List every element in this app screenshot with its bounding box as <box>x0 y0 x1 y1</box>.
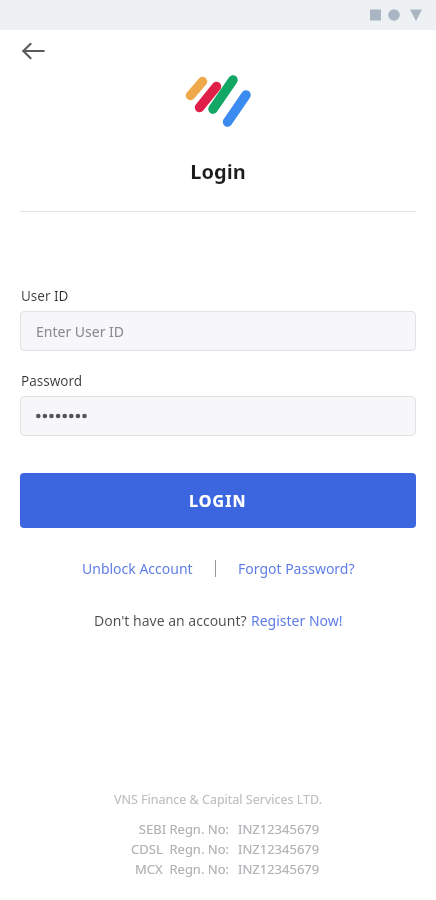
button[interactable]: Forgot Password? <box>232 555 361 582</box>
staticText: MCX Regn. No: <box>117 860 229 878</box>
staticText: Enter User ID <box>36 322 125 341</box>
button[interactable] <box>20 396 416 436</box>
staticText: SEBI Regn. No: <box>117 820 229 838</box>
staticText: INZ12345679 <box>238 820 320 838</box>
staticText: Register Now! <box>251 611 343 630</box>
button[interactable]: Enter User ID <box>20 311 416 351</box>
button[interactable]: LOGIN <box>20 473 416 528</box>
button[interactable]: Back <box>12 30 54 72</box>
staticText: VNS Finance & Capital Services LTD. <box>114 791 322 808</box>
staticText: User ID <box>21 287 69 305</box>
staticText: LOGIN <box>189 490 247 512</box>
button[interactable]: Register Now! <box>251 611 343 630</box>
staticText: Don't have an account? <box>94 611 251 630</box>
staticText: Forgot Password? <box>238 559 355 578</box>
staticText: INZ12345679 <box>238 840 320 858</box>
staticText: Unblock Account <box>82 559 193 578</box>
staticText: CDSL Regn. No: <box>117 840 229 858</box>
staticText: Password <box>21 372 83 390</box>
button[interactable]: Unblock Account <box>76 555 199 582</box>
staticText: Login <box>0 158 436 185</box>
staticText: INZ12345679 <box>238 860 320 878</box>
